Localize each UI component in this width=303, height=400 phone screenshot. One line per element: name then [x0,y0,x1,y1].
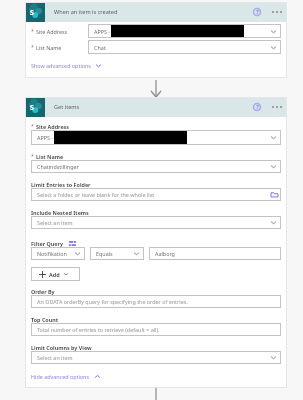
staticText: Order By [31,288,55,295]
staticText: Aalborg [155,250,175,257]
staticText: Include Nested Items [31,209,89,216]
staticText: Chat [94,44,106,51]
staticText: Select an item [37,354,73,361]
staticText: Site Address [36,123,70,130]
staticText: Select a folder, or leave blank for the … [37,191,271,198]
button[interactable]: Total number of entries to retrieve (def… [31,323,281,336]
button[interactable]: Equals [90,247,144,260]
staticText: Select an item [37,219,73,226]
staticText: S [30,103,34,113]
button[interactable]: An ODATA orderBy query for specifying th… [31,295,281,308]
button[interactable]: Notifikation [31,247,85,260]
staticText: APPS - [37,134,54,141]
staticText: Get items [54,103,80,111]
button[interactable]: More options [272,11,282,13]
staticText: ? [256,103,259,111]
staticText: Equals [96,250,113,257]
button[interactable]: APPS - [31,130,281,145]
button[interactable]: Aalborg [149,247,281,260]
button[interactable]: S [25,2,287,22]
staticText: List Name [36,44,62,51]
button[interactable]: Add [31,267,80,281]
staticText: Limit Entries to Folder [31,181,91,188]
staticText: Limit Columns by View [31,344,92,351]
staticText: Total number of entries to retrieve (def… [37,326,160,333]
button[interactable]: S [25,97,287,117]
staticText: Show advanced options [31,62,91,69]
staticText: Site Address [36,28,68,35]
button[interactable]: Show advanced options [31,62,102,69]
button[interactable]: Chat [88,40,281,54]
staticText: Chatindstillinger [37,163,79,170]
staticText: * [31,153,34,160]
staticText: Add [49,271,60,278]
button[interactable]: Select a folder, or leave blank for the … [31,188,281,201]
button[interactable]: Hide advanced options [31,373,101,380]
button[interactable]: APPS - [88,24,281,38]
staticText: S [30,8,34,18]
button[interactable]: Select an item [31,216,281,229]
staticText: ? [256,8,259,16]
button[interactable]: Chatindstillinger [31,160,281,173]
staticText: An ODATA orderBy query for specifying th… [37,298,188,305]
staticText: When an item is created [54,8,118,16]
staticText: Notifikation [37,250,67,257]
staticText: * [31,123,34,130]
staticText: * [31,28,34,35]
staticText: Hide advanced options [31,373,90,380]
button[interactable]: Help [253,103,261,111]
button[interactable]: More options [272,106,282,108]
staticText: List Name [36,153,64,160]
staticText: * [31,44,34,51]
staticText: Top Count [31,316,59,323]
staticText: APPS - [94,28,111,35]
staticText: Filter Query [31,240,64,247]
button[interactable]: Select an item [31,351,281,364]
button[interactable]: Help [253,8,261,16]
